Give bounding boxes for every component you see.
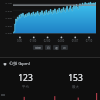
other: Heart rate [3, 62, 7, 66]
staticText: 04:00 [54, 39, 68, 43]
staticText: 0.075 [5, 9, 12, 12]
button[interactable]: 日 [45, 45, 51, 50]
staticText: 01:00 [26, 39, 40, 43]
staticText: 週 [55, 46, 58, 50]
button[interactable]: Activity chart [0, 0, 100, 36]
staticText: 0.050 [5, 16, 12, 19]
staticText: 最大 [72, 85, 79, 89]
staticText: 123 [18, 72, 33, 84]
staticText: 平均 [22, 85, 29, 89]
staticText: 02:00 [40, 39, 54, 43]
button[interactable]: 週 [53, 45, 59, 50]
staticText: 07:10 [82, 39, 96, 43]
staticText: 時間 [35, 46, 41, 50]
staticText: 0.000 [5, 31, 12, 34]
button[interactable]: 153 [50, 71, 100, 90]
staticText: 月 [63, 46, 66, 50]
staticText: 0:00 [13, 39, 26, 43]
staticText: 05:07 [68, 39, 82, 43]
staticText: 0.025 [5, 24, 12, 27]
staticText: 日 [47, 46, 50, 50]
staticText: 心拍 (bpm) [9, 61, 31, 67]
button[interactable]: 123 [0, 71, 50, 90]
button[interactable]: Heart rate [0, 60, 100, 68]
button[interactable]: Heart rate chart [0, 93, 100, 100]
staticText: 153 [68, 72, 83, 84]
button[interactable]: 時間 [33, 45, 43, 50]
button[interactable]: 月 [61, 45, 68, 50]
staticText: 0.100 [5, 1, 12, 4]
